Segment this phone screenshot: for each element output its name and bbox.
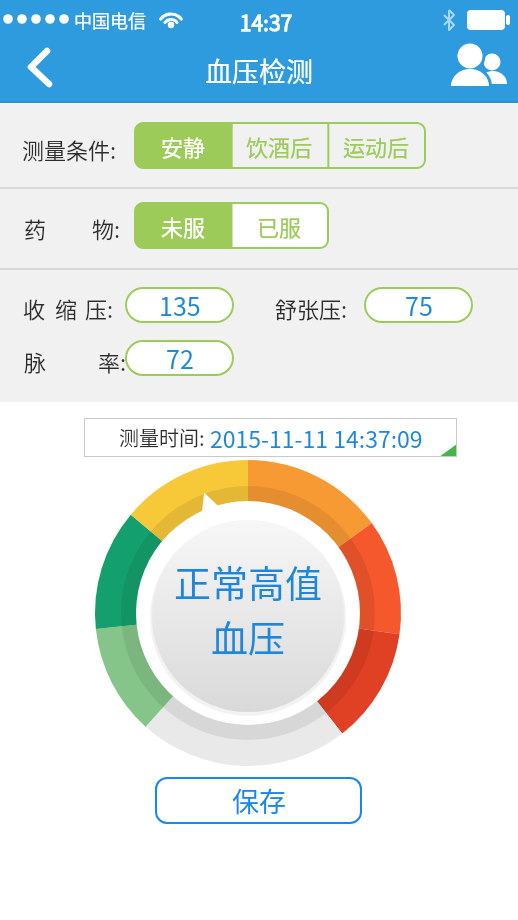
staticText: 未服 bbox=[161, 210, 206, 242]
staticText: 舒张压: bbox=[275, 292, 348, 324]
button[interactable]: 已服 bbox=[231, 203, 328, 248]
button[interactable]: 保存 bbox=[155, 777, 362, 824]
button[interactable] bbox=[448, 42, 508, 90]
button[interactable]: 75 bbox=[364, 287, 473, 323]
staticText: 血压 bbox=[211, 610, 285, 664]
button[interactable]: 135 bbox=[125, 287, 234, 323]
staticText: 测量条件: bbox=[22, 133, 117, 165]
staticText: 135 bbox=[159, 287, 201, 323]
button[interactable]: 测量时间: bbox=[84, 418, 457, 457]
staticText: 脉 bbox=[24, 345, 47, 377]
staticText: 正常高值 bbox=[174, 555, 322, 609]
staticText: 安静 bbox=[161, 130, 206, 162]
button[interactable]: 72 bbox=[125, 340, 234, 376]
staticText: 血压检测 bbox=[205, 51, 313, 90]
staticText: 运动后 bbox=[343, 130, 410, 162]
staticText: 14:37 bbox=[7, 7, 518, 37]
staticText: 已服 bbox=[257, 210, 302, 242]
staticText: 压: bbox=[85, 292, 114, 324]
staticText: 物: bbox=[92, 212, 121, 244]
staticText: 72 bbox=[166, 340, 194, 376]
staticText: 饮酒后 bbox=[246, 130, 313, 162]
staticText: 2015-11-11 14:37:09 bbox=[210, 421, 423, 454]
button[interactable]: 安静 bbox=[135, 123, 231, 168]
button[interactable]: 运动后 bbox=[328, 123, 425, 168]
button[interactable] bbox=[10, 40, 70, 101]
staticText: 测量时间: bbox=[119, 423, 210, 452]
staticText: 缩 bbox=[55, 292, 78, 324]
staticText: 收 bbox=[23, 292, 46, 324]
button[interactable]: 未服 bbox=[135, 203, 231, 248]
staticText: 保存 bbox=[232, 781, 286, 820]
staticText: 药 bbox=[24, 212, 47, 244]
staticText: 75 bbox=[405, 287, 433, 323]
staticText: 中国电信 bbox=[74, 7, 146, 33]
staticText: 率: bbox=[98, 345, 127, 377]
button[interactable]: 饮酒后 bbox=[231, 123, 328, 168]
